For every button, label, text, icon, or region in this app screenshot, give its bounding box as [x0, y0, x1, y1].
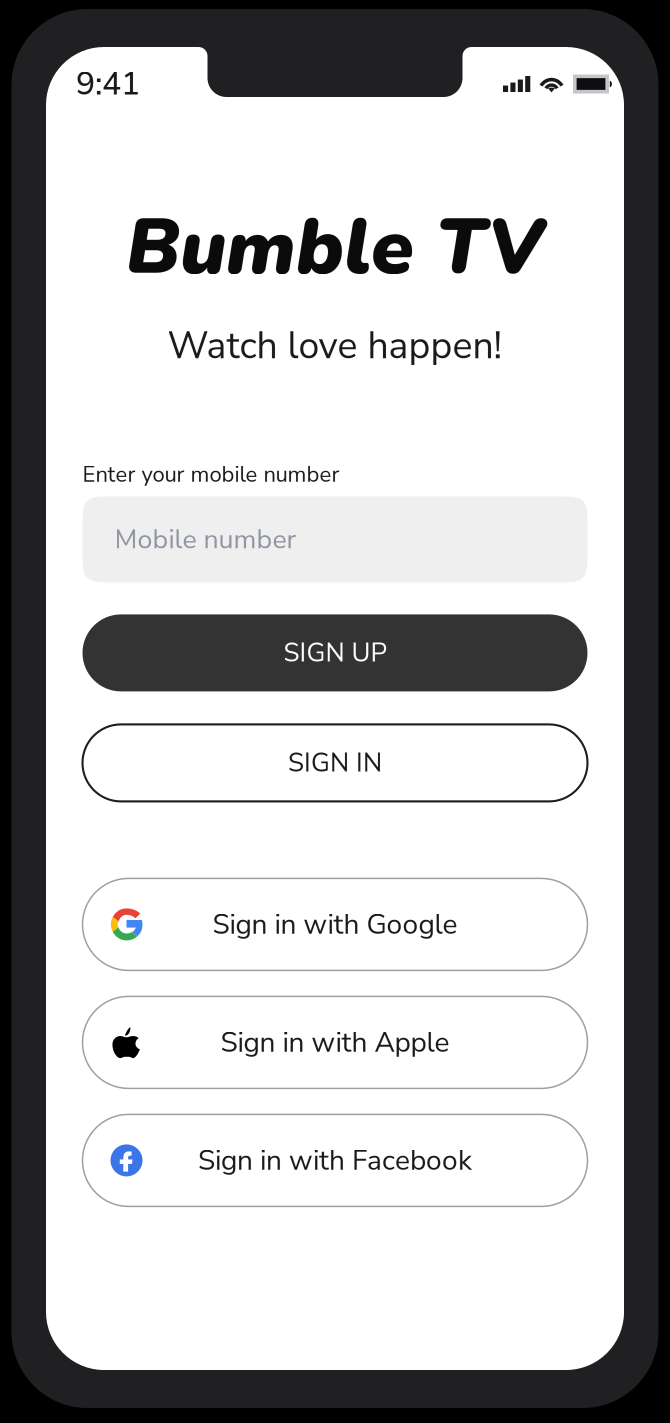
- staticText: Watch love happen!: [167, 320, 502, 371]
- button[interactable]: SIGN IN: [82, 724, 587, 801]
- staticText: Bumble TV: [126, 195, 544, 300]
- button[interactable]: Sign in with Apple: [82, 996, 587, 1088]
- staticText: SIGN IN: [288, 745, 382, 781]
- staticText: SIGN UP: [283, 635, 386, 671]
- button[interactable]: SIGN UP: [82, 614, 587, 691]
- staticText: Sign in with Apple: [220, 1023, 449, 1061]
- staticText: Mobile number: [114, 521, 296, 558]
- button[interactable]: Sign in with Facebook: [82, 1114, 587, 1206]
- staticText: Sign in with Google: [212, 905, 457, 943]
- button[interactable]: Sign in with Google: [82, 878, 587, 970]
- staticText: Sign in with Facebook: [198, 1141, 472, 1179]
- staticText: 9:41: [76, 62, 140, 106]
- staticText: Enter your mobile number: [82, 459, 339, 489]
